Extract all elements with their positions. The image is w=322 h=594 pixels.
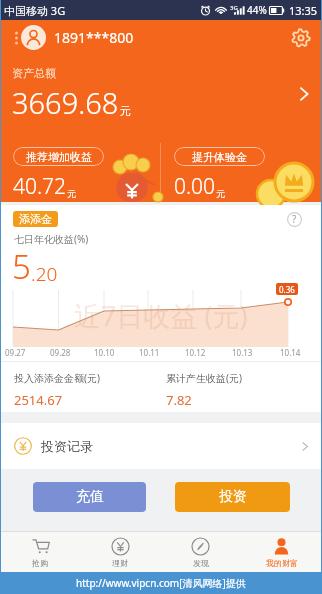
staticText: 3G: [230, 4, 238, 12]
staticText: 1891***800: [54, 28, 134, 47]
staticText: 添添金: [19, 212, 52, 226]
button[interactable]: Settings: [286, 23, 316, 53]
staticText: 3669.68: [12, 83, 119, 122]
staticText: 发现: [193, 558, 209, 568]
staticText: 投入添添金金额(元): [14, 371, 100, 385]
staticText: 10.10: [94, 347, 115, 358]
staticText: 充值: [76, 488, 104, 506]
staticText: 提升体验金: [192, 150, 247, 164]
button[interactable]: 投资: [175, 482, 290, 512]
staticText: 10.11: [139, 347, 160, 358]
button[interactable]: 充值: [33, 482, 146, 512]
staticText: 元: [67, 188, 76, 199]
staticText: 7.82: [166, 391, 192, 409]
staticText: 推荐增加收益: [26, 150, 92, 164]
staticText: ?: [292, 212, 297, 226]
staticText: 0.36: [279, 284, 295, 295]
button[interactable]: 我的财富: [241, 532, 322, 572]
staticText: 近7日收益 (元): [74, 297, 248, 334]
button[interactable]: 资产总额: [0, 55, 322, 133]
staticText: 10.13: [232, 347, 253, 358]
staticText: 09.27: [5, 347, 26, 358]
button[interactable]: 抢购: [0, 532, 80, 572]
staticText: 元: [216, 188, 225, 199]
staticText: 七日年化收益(%): [14, 232, 89, 246]
button[interactable]: 理财: [80, 532, 160, 572]
staticText: 中国移动 3G: [4, 3, 66, 18]
button[interactable]: 投资记录: [1, 423, 321, 469]
staticText: 累计产生收益(元): [166, 371, 242, 385]
staticText: 2514.67: [14, 391, 63, 409]
staticText: 0.00: [174, 172, 216, 201]
staticText: 元: [120, 104, 131, 118]
staticText: 09.28: [50, 347, 71, 358]
staticText: 我的财富: [266, 558, 298, 568]
button[interactable]: 提升体验金: [161, 133, 322, 202]
staticText: 10.14: [280, 347, 301, 358]
staticText: 13:35: [289, 3, 318, 18]
button[interactable]: 发现: [160, 532, 241, 572]
button[interactable]: 推荐增加收益: [0, 133, 160, 202]
staticText: 44%: [247, 3, 267, 17]
staticText: 投资记录: [41, 438, 93, 454]
staticText: .20: [31, 261, 58, 287]
staticText: 10.12: [185, 347, 206, 358]
staticText: 40.72: [13, 172, 67, 201]
staticText: 抢购: [32, 558, 48, 568]
staticText: 投资: [219, 488, 247, 506]
staticText: 资产总额: [12, 66, 56, 80]
staticText: 5: [12, 244, 31, 289]
button[interactable]: Help: [285, 210, 303, 228]
staticText: 理财: [112, 558, 128, 568]
staticText: http://www.vipcn.com[清风网络]提供: [76, 576, 246, 590]
